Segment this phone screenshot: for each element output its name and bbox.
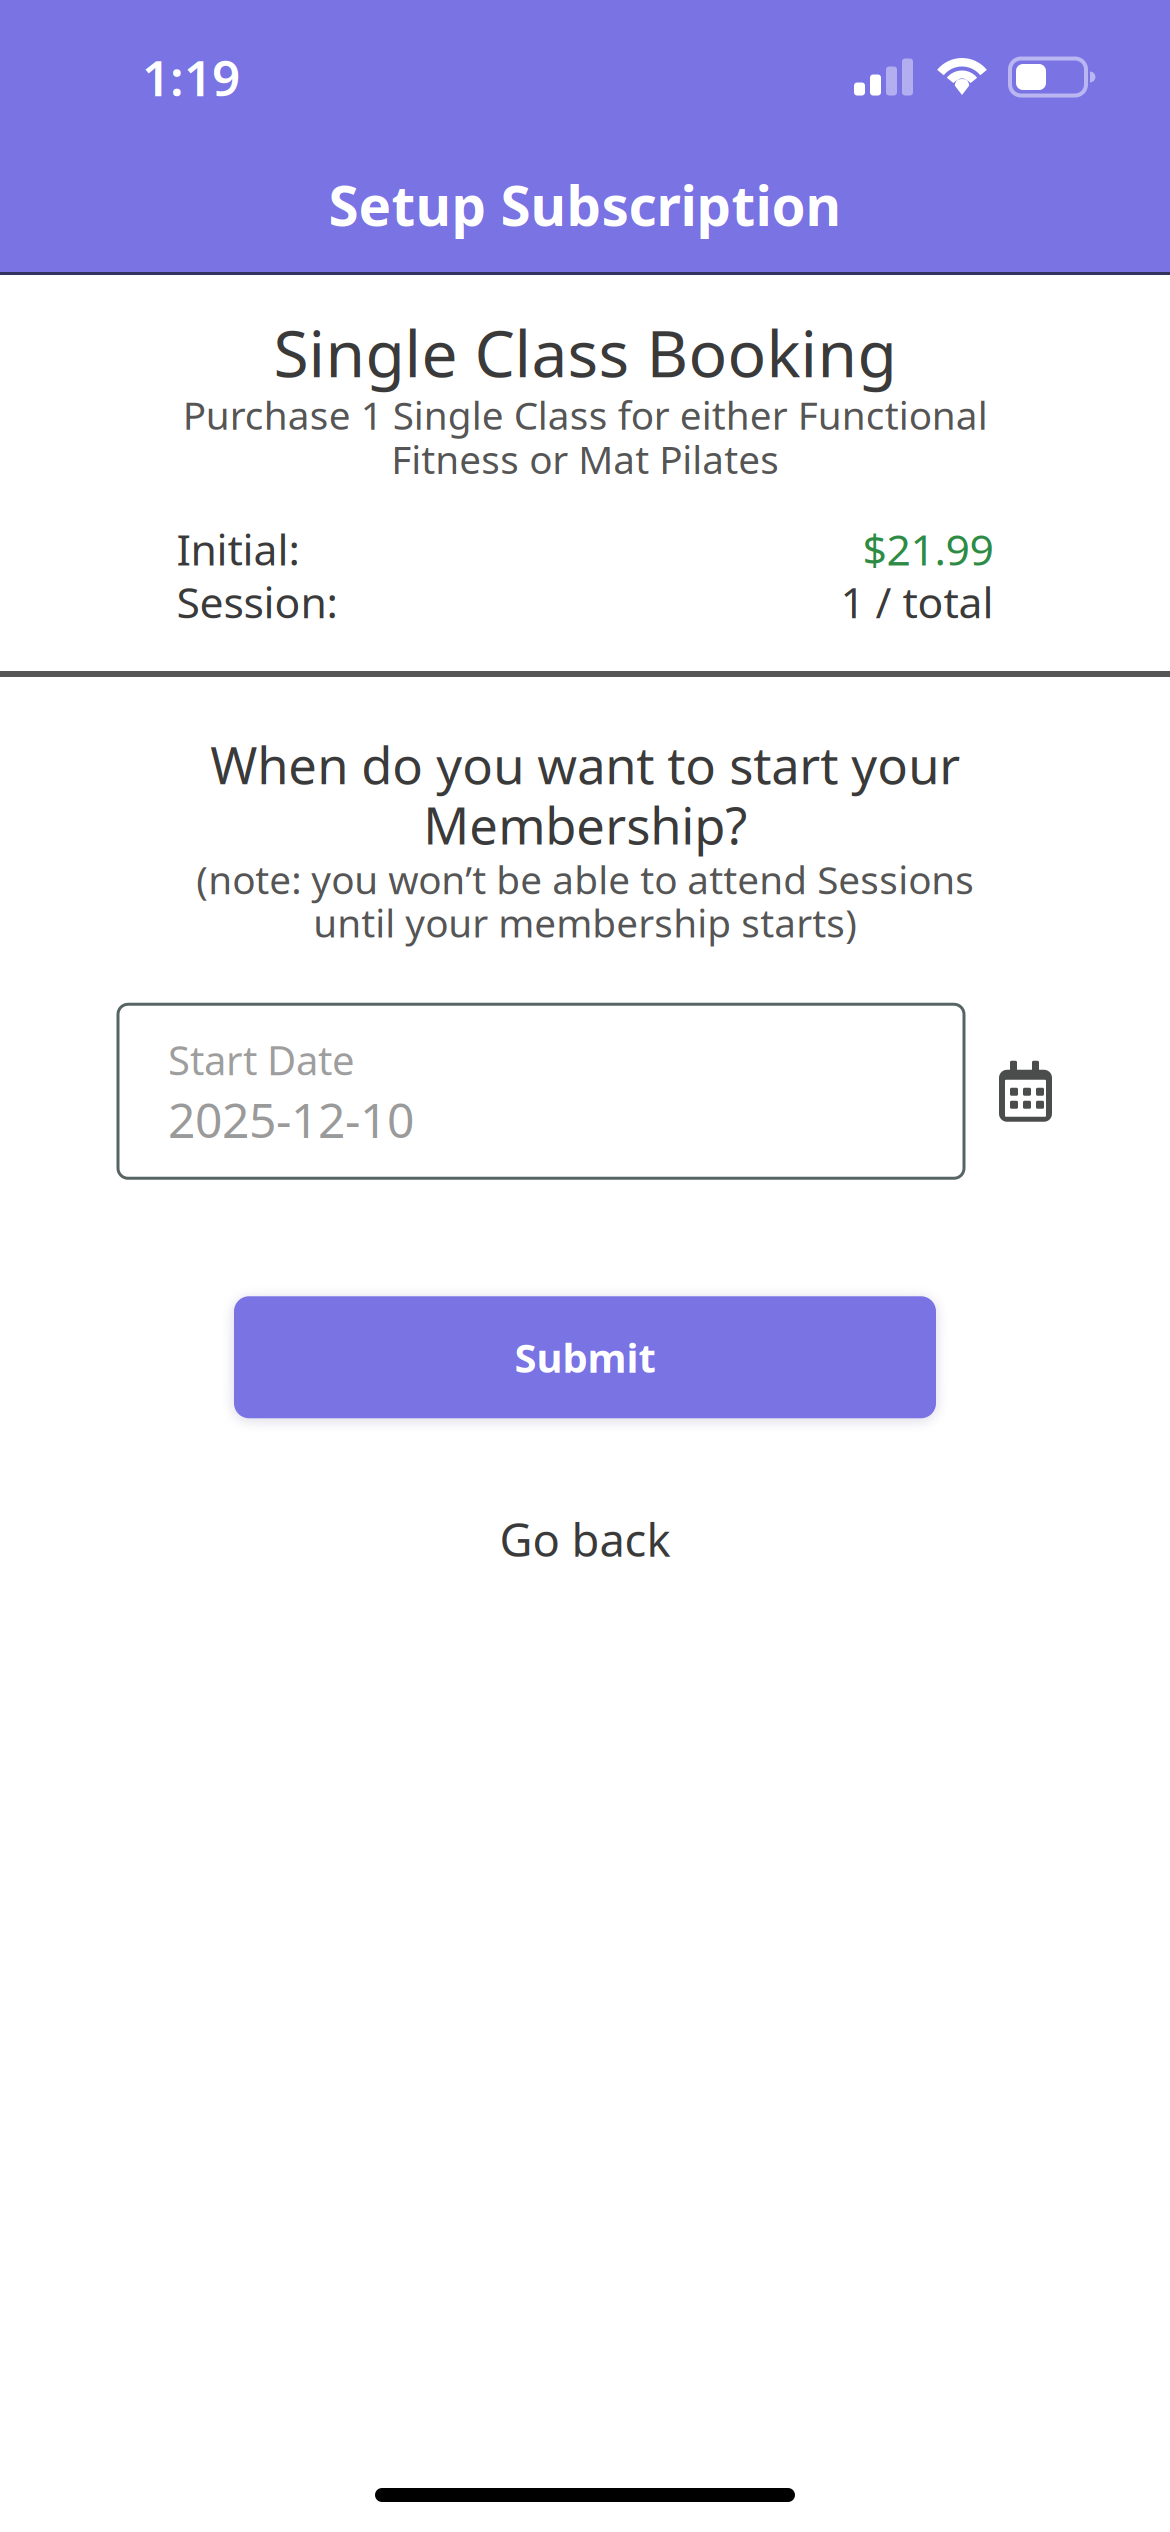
staticText: When do you want to start your Membershi… [210,731,960,859]
staticText: Go back [499,1509,670,1569]
staticText: $21.99 [862,521,993,577]
staticText: 1:19 [142,44,240,110]
button[interactable]: Open calendar [999,1031,1052,1151]
button[interactable]: Start Date [118,1004,964,1178]
staticText: Purchase 1 Single Class for either Funct… [182,389,987,485]
staticText: 2025-12-10 [168,1087,414,1151]
staticText: 1 / total [840,573,993,630]
staticText: Start Date [168,1033,355,1086]
staticText: Setup Subscription [328,168,841,241]
button[interactable]: Submit [234,1296,936,1418]
staticText: Initial: [176,521,299,577]
staticText: Session: [176,573,337,630]
staticText: Single Class Booking [273,310,896,395]
button[interactable]: Go back [455,1505,715,1573]
staticText: Submit [514,1331,655,1384]
staticText: (note: you won’t be able to attend Sessi… [196,854,974,948]
